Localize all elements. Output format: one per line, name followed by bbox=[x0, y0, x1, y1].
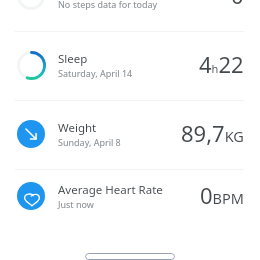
staticText: 0BPM bbox=[200, 180, 244, 210]
button[interactable]: Sleep bbox=[0, 32, 260, 100]
button[interactable]: Steps bbox=[0, 0, 260, 31]
staticText: 4h22 bbox=[199, 49, 244, 79]
other: Weight bbox=[17, 120, 45, 148]
staticText: Sleep bbox=[58, 51, 88, 67]
staticText: Sunday, April 8 bbox=[58, 136, 121, 148]
button[interactable] bbox=[85, 253, 175, 260]
staticText: No steps data for today bbox=[58, 0, 158, 10]
staticText: 89,7KG bbox=[181, 118, 244, 148]
staticText: Average Heart Rate bbox=[58, 182, 163, 198]
staticText: Saturday, April 14 bbox=[58, 67, 133, 79]
button[interactable]: Weight bbox=[0, 101, 260, 169]
staticText: Weight bbox=[58, 120, 97, 136]
staticText: 0 bbox=[231, 0, 244, 10]
staticText: Just now bbox=[58, 198, 94, 210]
other: Average Heart Rate bbox=[17, 182, 45, 210]
button[interactable]: Average Heart Rate bbox=[0, 170, 260, 223]
